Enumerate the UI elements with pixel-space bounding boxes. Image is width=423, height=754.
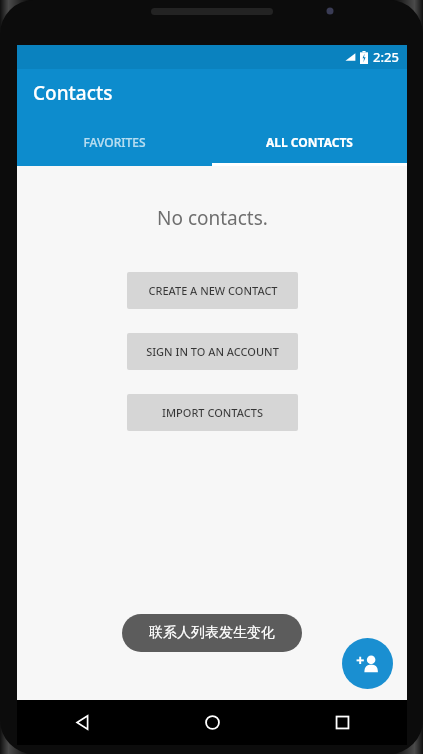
button[interactable]: Back <box>17 700 147 745</box>
button[interactable]: ALL CONTACTS <box>212 117 407 166</box>
staticText: FAVORITES <box>83 134 146 150</box>
staticText: Contacts <box>33 80 113 106</box>
button[interactable]: Recents <box>277 700 407 745</box>
button[interactable]: Home <box>147 700 277 745</box>
staticText: IMPORT CONTACTS <box>162 405 263 420</box>
button[interactable]: SIGN IN TO AN ACCOUNT <box>127 333 298 370</box>
button[interactable]: FAVORITES <box>17 117 212 166</box>
staticText: No contacts. <box>157 205 268 231</box>
button[interactable]: IMPORT CONTACTS <box>127 394 298 431</box>
button[interactable]: Add contact <box>342 638 393 689</box>
staticText: 联系人列表发生变化 <box>149 624 275 642</box>
staticText: ALL CONTACTS <box>266 134 353 150</box>
staticText: CREATE A NEW CONTACT <box>148 283 278 298</box>
button[interactable]: CREATE A NEW CONTACT <box>127 272 298 309</box>
staticText: SIGN IN TO AN ACCOUNT <box>146 344 279 359</box>
staticText: 2:25 <box>373 48 399 66</box>
